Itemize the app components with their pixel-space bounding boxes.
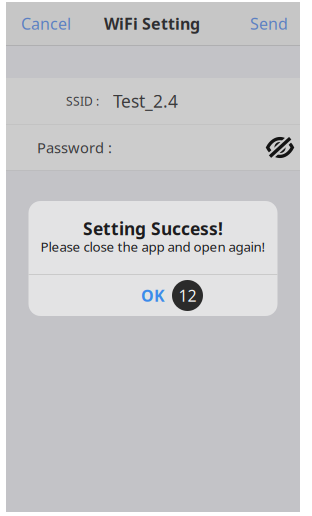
staticText: OK <box>141 285 165 306</box>
staticText: Please close the app and open again! <box>40 238 265 255</box>
staticText: Setting Success! <box>83 217 223 240</box>
staticText: Password : <box>37 138 112 157</box>
button[interactable]: Send <box>240 2 300 45</box>
staticText: 12 <box>178 285 196 306</box>
staticText: SSID : <box>66 93 99 109</box>
staticText: Send <box>250 13 288 34</box>
staticText: WiFi Setting <box>104 13 200 34</box>
button[interactable]: Hide password <box>256 127 300 168</box>
button[interactable]: OK <box>28 275 277 316</box>
staticText: Test_2.4 <box>113 89 178 112</box>
staticText: Cancel <box>21 13 71 34</box>
button[interactable]: Cancel <box>6 2 81 45</box>
